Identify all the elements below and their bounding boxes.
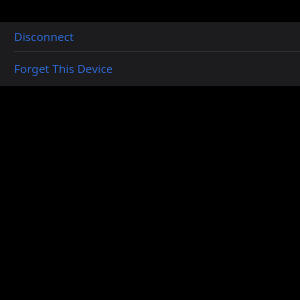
- staticText: Disconnect: [14, 29, 74, 45]
- button[interactable]: Forget This Device: [0, 52, 300, 86]
- staticText: Forget This Device: [14, 61, 113, 77]
- button[interactable]: Disconnect: [0, 22, 300, 51]
